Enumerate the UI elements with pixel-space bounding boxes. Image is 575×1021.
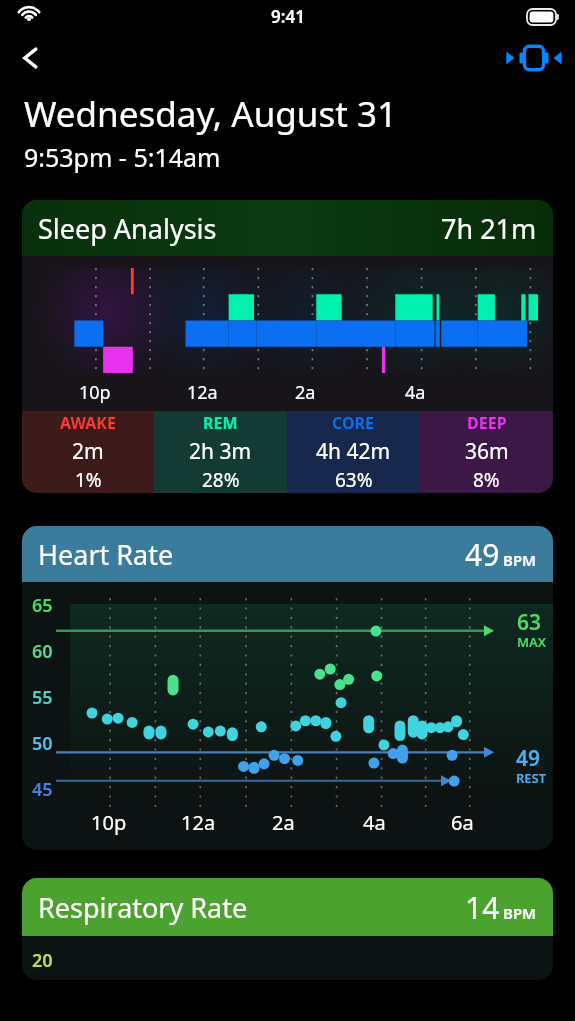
staticText: 20 bbox=[32, 948, 53, 973]
button[interactable]: AWAKE bbox=[22, 411, 154, 493]
staticText: CORE bbox=[332, 412, 375, 434]
staticText: 60 bbox=[32, 639, 53, 664]
button[interactable]: CORE bbox=[287, 411, 420, 493]
staticText: 9:41 bbox=[271, 5, 305, 28]
staticText: 49 bbox=[516, 744, 541, 773]
staticText: 50 bbox=[32, 731, 53, 756]
staticText: 45 bbox=[32, 777, 53, 802]
staticText: 28% bbox=[202, 467, 240, 493]
staticText: AWAKE bbox=[60, 412, 116, 434]
staticText: 4a bbox=[363, 809, 386, 836]
staticText: 8% bbox=[473, 467, 500, 493]
staticText: 2a bbox=[295, 380, 316, 405]
staticText: 12a bbox=[187, 380, 218, 405]
staticText: 63 bbox=[517, 608, 542, 637]
staticText: 1% bbox=[75, 467, 102, 493]
staticText: REST bbox=[516, 769, 547, 787]
staticText: 55 bbox=[32, 685, 53, 710]
staticText: BPM bbox=[503, 903, 537, 923]
staticText: Respiratory Rate bbox=[38, 889, 248, 926]
staticText: Wednesday, August 31 bbox=[24, 90, 398, 138]
staticText: 2a bbox=[272, 809, 295, 836]
staticText: MAX bbox=[517, 633, 547, 651]
staticText: 36m bbox=[465, 437, 509, 466]
button[interactable]: DEEP bbox=[420, 411, 553, 493]
button[interactable]: Heart Rate bbox=[22, 526, 553, 850]
button[interactable]: Back bbox=[6, 34, 56, 82]
button[interactable]: Sleep Analysis bbox=[22, 200, 553, 493]
staticText: 10p bbox=[79, 380, 111, 405]
staticText: 10p bbox=[91, 809, 127, 836]
staticText: BPM bbox=[503, 550, 537, 570]
staticText: 2m bbox=[72, 437, 104, 466]
button[interactable]: AirPlay to device bbox=[507, 34, 561, 82]
staticText: 2h 3m bbox=[189, 437, 252, 466]
button[interactable]: Respiratory Rate bbox=[22, 878, 553, 980]
staticText: 6a bbox=[451, 809, 474, 836]
button[interactable]: REM bbox=[154, 411, 287, 493]
staticText: DEEP bbox=[467, 412, 507, 434]
staticText: Heart Rate bbox=[38, 536, 174, 573]
staticText: 9:53pm - 5:14am bbox=[24, 140, 221, 174]
staticText: REM bbox=[203, 412, 238, 434]
staticText: 63% bbox=[335, 467, 373, 493]
staticText: 14 bbox=[465, 887, 500, 928]
staticText: 49 bbox=[465, 534, 500, 575]
staticText: 65 bbox=[32, 593, 53, 618]
staticText: Sleep Analysis bbox=[38, 210, 217, 247]
staticText: 7h 21m bbox=[441, 210, 537, 247]
staticText: 4a bbox=[405, 380, 426, 405]
staticText: 12a bbox=[181, 809, 216, 836]
staticText: 4h 42m bbox=[316, 437, 391, 466]
